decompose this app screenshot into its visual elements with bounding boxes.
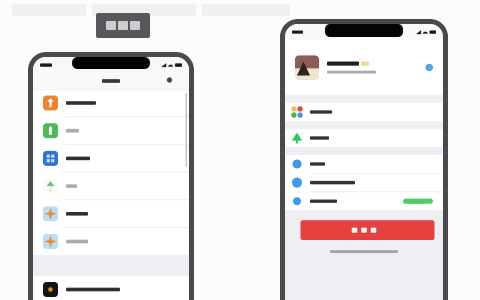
button[interactable] (33, 117, 189, 144)
button[interactable] (33, 145, 189, 172)
button[interactable] (285, 174, 443, 192)
button[interactable] (33, 89, 189, 116)
button[interactable] (285, 103, 443, 121)
button[interactable] (33, 200, 189, 227)
button[interactable] (33, 173, 189, 200)
button[interactable] (285, 220, 443, 240)
button[interactable] (33, 228, 189, 255)
button[interactable] (285, 155, 443, 173)
button[interactable] (33, 276, 189, 300)
button[interactable] (285, 129, 443, 147)
button[interactable]: Search (161, 73, 180, 89)
button[interactable] (285, 40, 443, 95)
button[interactable] (285, 192, 443, 210)
